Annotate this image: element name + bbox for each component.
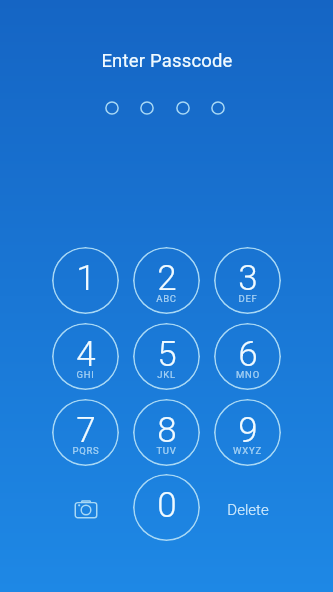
button[interactable]: 4 [52,323,119,390]
button[interactable]: 5 [133,323,200,390]
staticText: DEF [238,293,258,304]
staticText: Delete [227,501,269,519]
staticText: MNO [236,369,260,380]
staticText: WXYZ [233,445,262,456]
staticText: 9 [238,410,258,444]
button[interactable]: 6 [214,323,281,390]
button[interactable]: 9 [214,399,281,466]
button[interactable]: 7 [52,399,119,466]
staticText: ABC [156,293,177,304]
staticText: TUV [156,445,177,456]
button[interactable]: 2 [133,247,200,314]
button[interactable]: Delete [214,474,281,541]
staticText: 5 [157,334,177,368]
staticText: 0 [157,485,177,519]
staticText: 6 [238,334,258,368]
staticText: JKL [157,369,176,380]
staticText: Enter Passcode [101,50,233,72]
staticText: 4 [76,334,96,368]
staticText: GHI [76,369,95,380]
staticText: PQRS [72,445,100,456]
button[interactable]: Open camera [52,474,119,541]
button[interactable]: 8 [133,399,200,466]
staticText: 1 [76,258,96,292]
staticText: 7 [76,410,96,444]
staticText: 3 [238,258,258,292]
staticText: 8 [157,410,177,444]
staticText: 2 [157,258,177,292]
button[interactable]: 3 [214,247,281,314]
button[interactable]: 1 [52,247,119,314]
button[interactable]: 0 [133,474,200,541]
